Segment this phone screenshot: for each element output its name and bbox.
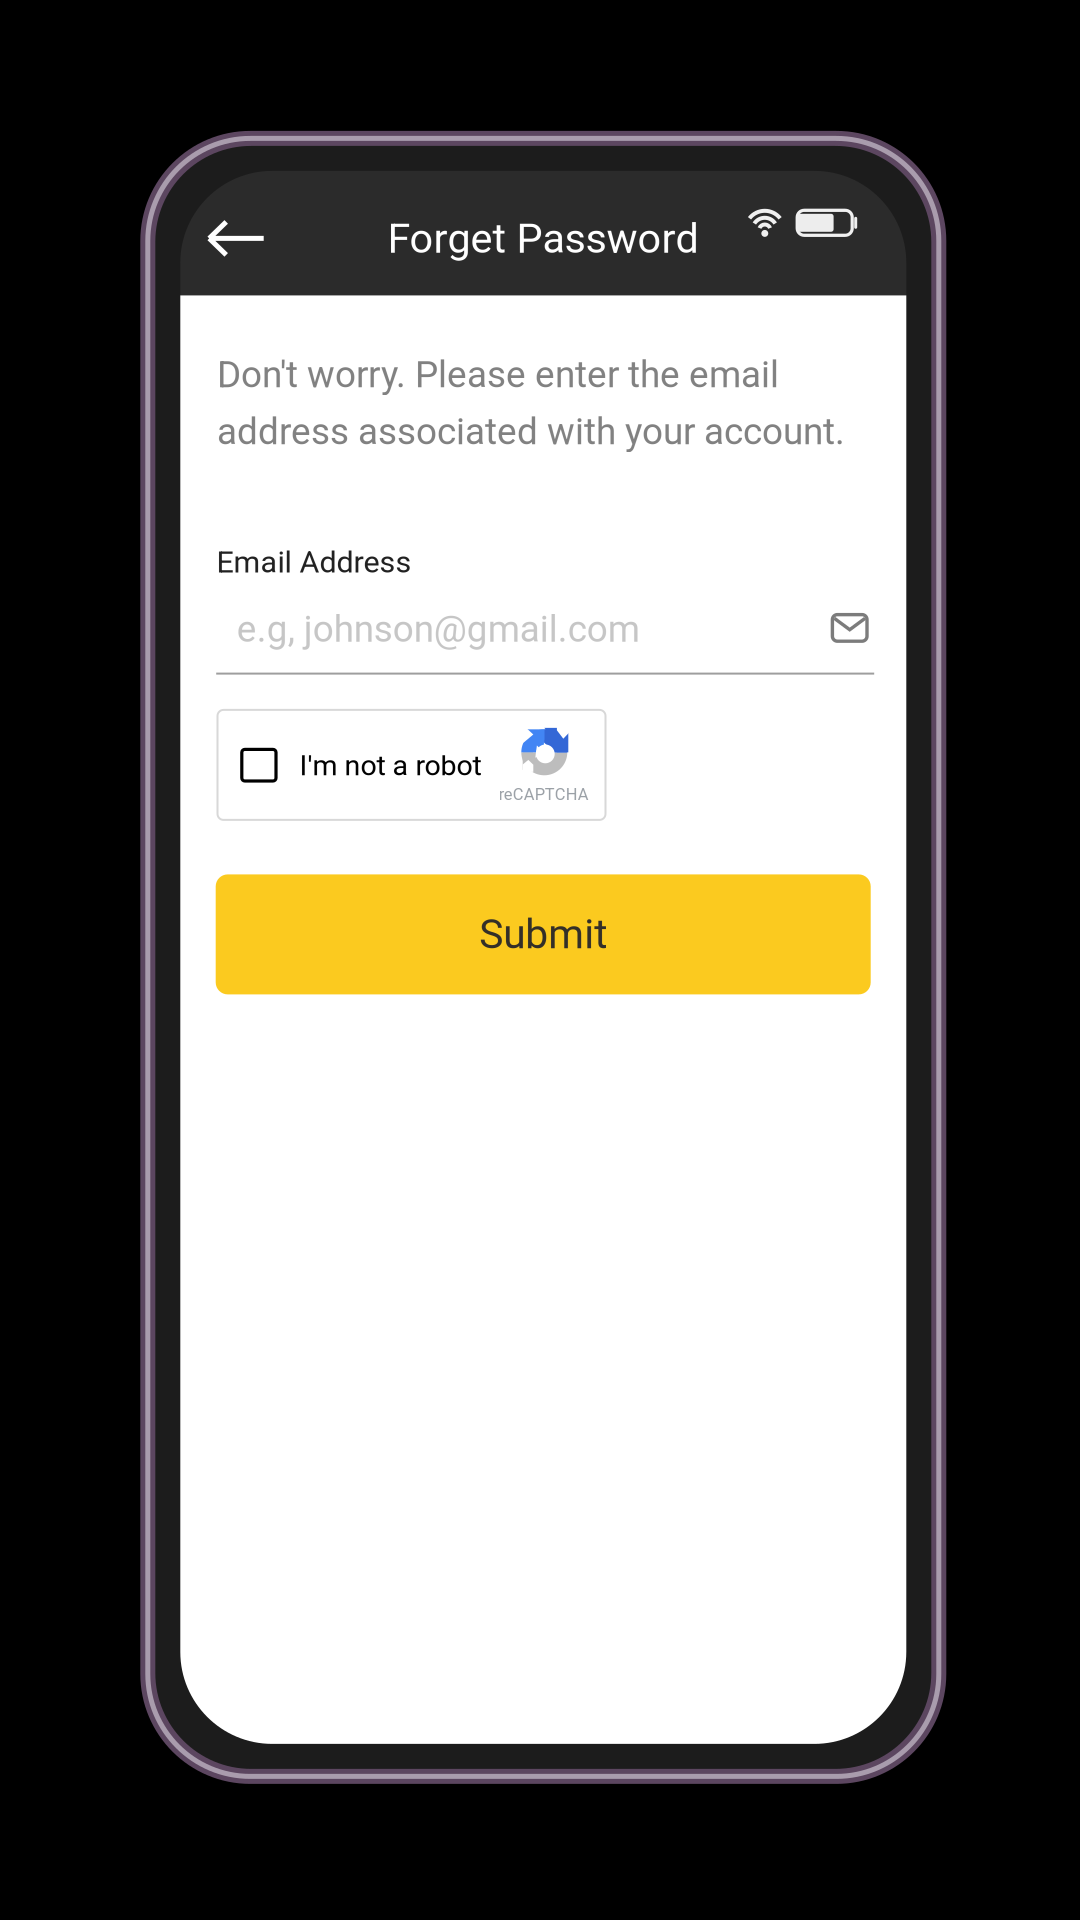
button[interactable]: Submit (216, 874, 871, 994)
staticText: Email Address (216, 544, 411, 580)
staticText: reCAPTCHA (499, 785, 589, 804)
button[interactable]: Back (188, 176, 284, 301)
staticText: Forget Password (388, 214, 699, 263)
staticText: e.g, johnson@gmail.com (237, 607, 640, 651)
staticText: I'm not a robot (299, 749, 481, 782)
staticText: Submit (479, 911, 607, 958)
staticText: Don't worry. Please enter the email (217, 353, 779, 396)
staticText: address associated with your account. (217, 410, 845, 453)
button[interactable]: I'm not a robot (216, 709, 606, 821)
